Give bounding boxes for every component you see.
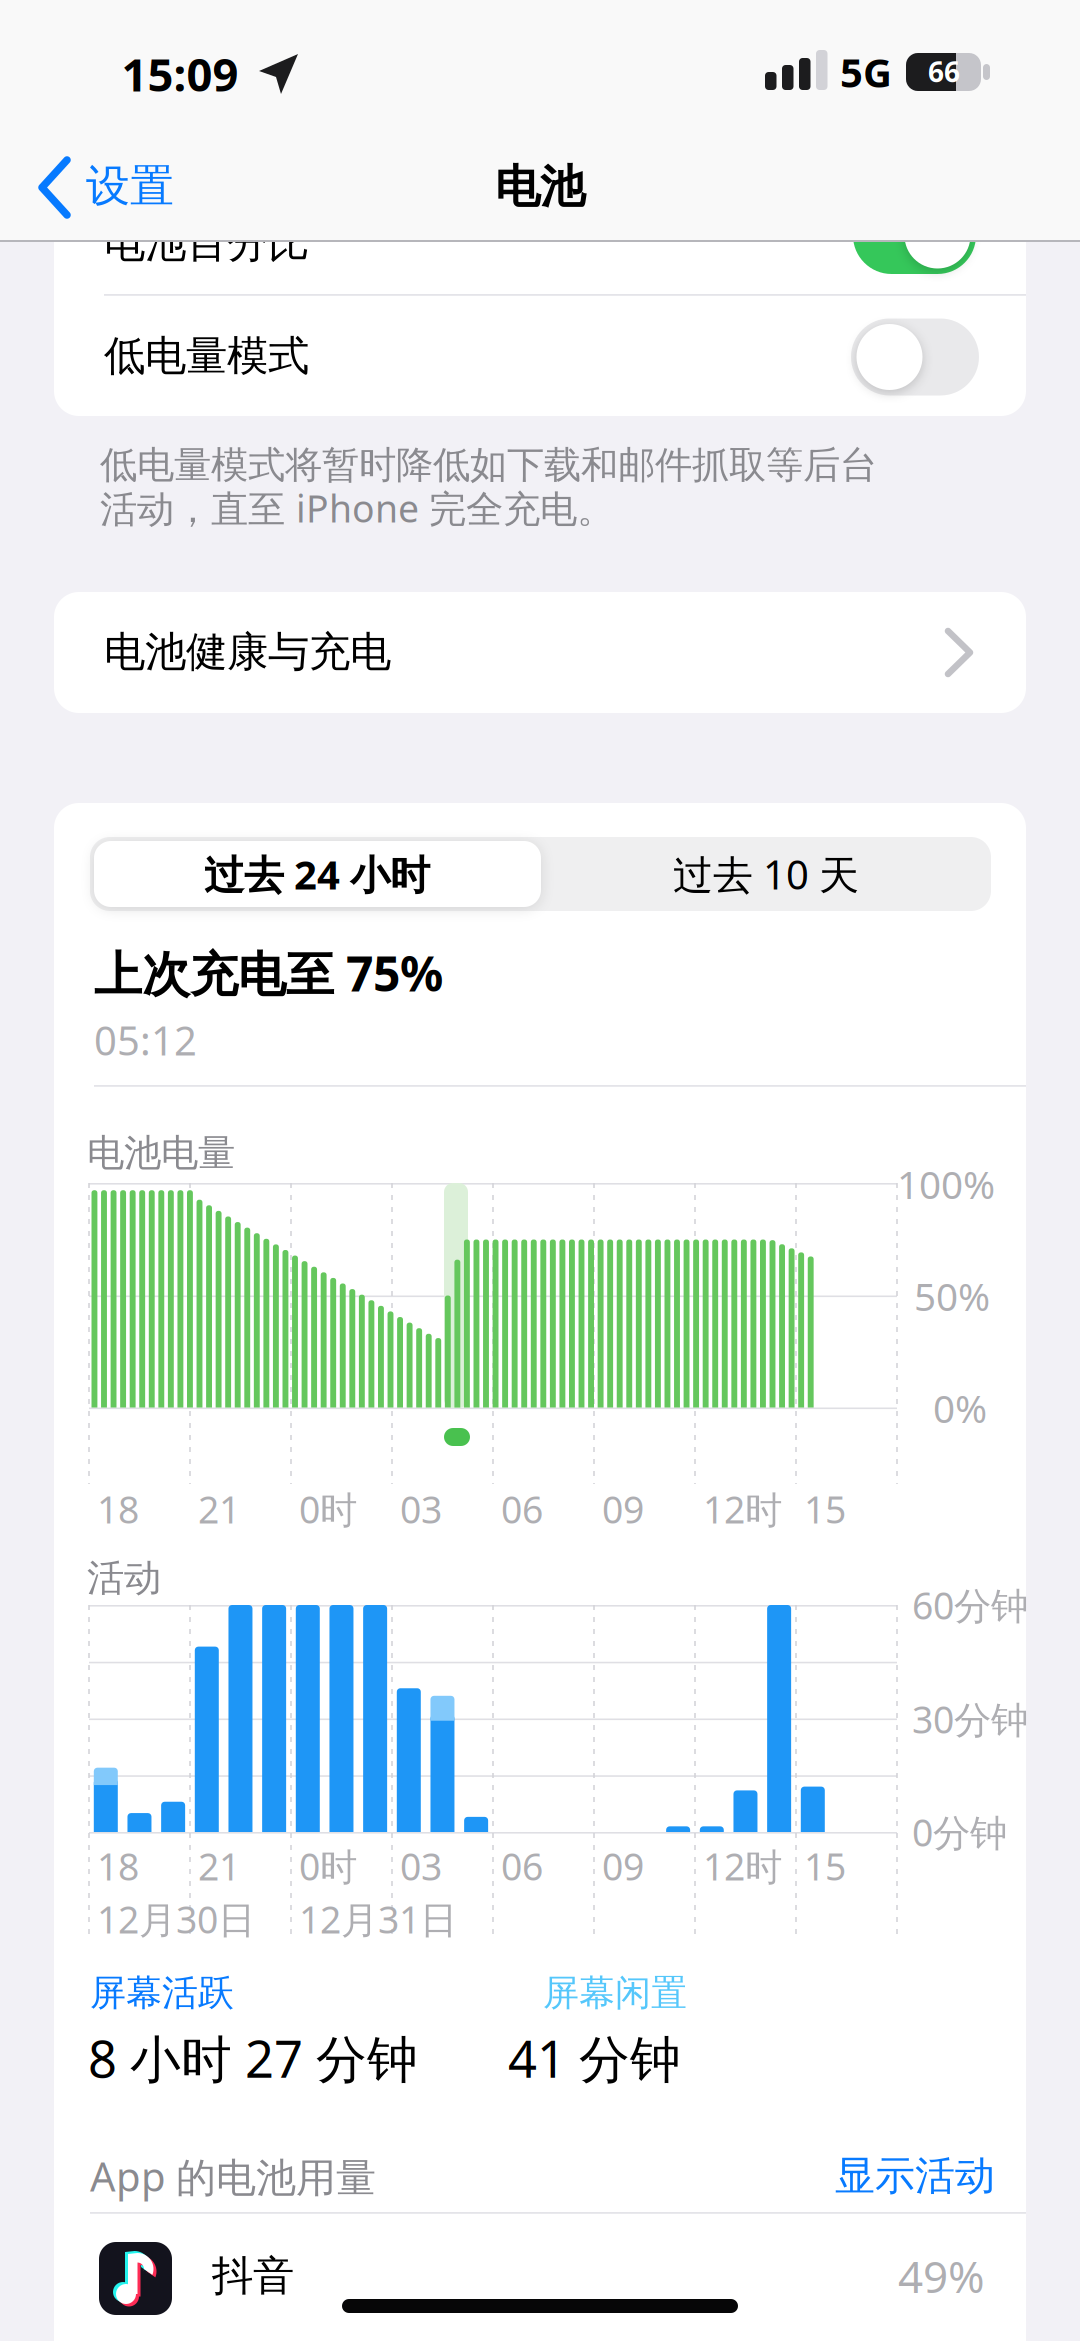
staticText: 电池百分比 <box>104 218 309 268</box>
staticText: 过去 24 小时 <box>204 847 430 900</box>
staticText: 18 <box>97 1841 139 1891</box>
staticText: 设置 <box>86 159 174 213</box>
staticText: 06 <box>501 1841 543 1891</box>
staticText: 活动，直至 iPhone 完全充电。 <box>100 483 614 533</box>
staticText: 49% <box>898 2247 985 2305</box>
staticText: 30分钟 <box>912 1694 1028 1744</box>
staticText: 抖音 <box>212 2251 294 2301</box>
staticText: 电池电量 <box>87 1130 235 1176</box>
staticText: 显示活动 <box>835 2151 995 2200</box>
staticText: 活动 <box>87 1555 161 1601</box>
staticText: 06 <box>501 1484 543 1534</box>
staticText: 0% <box>933 1382 987 1434</box>
staticText: App 的电池用量 <box>90 2149 376 2203</box>
staticText: 0时 <box>299 1841 357 1891</box>
staticText: 5G <box>840 45 892 98</box>
staticText: 50% <box>914 1270 990 1322</box>
staticText: 05:12 <box>94 1013 197 1066</box>
staticText: 电池 <box>495 159 585 215</box>
staticText: 电池健康与充电 <box>104 627 391 677</box>
staticText: 低电量模式 <box>104 331 309 381</box>
staticText: 03 <box>400 1841 442 1891</box>
staticText: 12月31日 <box>299 1894 457 1944</box>
staticText: 低电量模式将暂时降低如下载和邮件抓取等后台 <box>100 442 877 488</box>
staticText: 09 <box>602 1484 644 1534</box>
staticText: 41 分钟 <box>508 2024 681 2092</box>
staticText: 15:09 <box>121 44 238 104</box>
staticText: 12月30日 <box>97 1894 255 1944</box>
staticText: 100% <box>897 1158 995 1210</box>
staticText: 21 <box>198 1484 240 1534</box>
staticText: 66 <box>928 53 960 90</box>
staticText: 21 <box>198 1841 240 1891</box>
staticText: 屏幕闲置 <box>543 1971 687 2015</box>
staticText: 12时 <box>703 1841 782 1891</box>
staticText: 03 <box>400 1484 442 1534</box>
staticText: 0分钟 <box>912 1807 1007 1857</box>
staticText: 60分钟 <box>912 1580 1028 1630</box>
staticText: 12时 <box>703 1484 782 1534</box>
staticText: 15 <box>804 1841 846 1891</box>
staticText: 8 小时 27 分钟 <box>88 2024 418 2092</box>
staticText: 09 <box>602 1841 644 1891</box>
staticText: 过去 10 天 <box>673 847 859 900</box>
staticText: 上次充电至 75% <box>94 941 443 1005</box>
staticText: 屏幕活跃 <box>90 1971 234 2015</box>
staticText: 15 <box>804 1484 846 1534</box>
staticText: 18 <box>97 1484 139 1534</box>
staticText: 0时 <box>299 1484 357 1534</box>
